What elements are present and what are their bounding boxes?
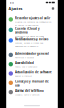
staticText: los equipos registrados xyxy=(15,38,38,41)
staticText: Permisos y accesos xyxy=(15,56,34,59)
staticText: Actualización de software xyxy=(15,70,52,74)
button[interactable]: Recordar ajustes al salir xyxy=(6,15,58,25)
staticText: Sonidos, globos e iconos que xyxy=(15,41,43,44)
staticText: Buscar e instalar xyxy=(15,74,32,77)
button[interactable]: Cuenta iCloud y sincronía xyxy=(6,25,58,36)
staticText: Sincroniza tus datos en todos xyxy=(15,35,44,38)
button[interactable]: Consejos y manual de uso xyxy=(6,78,58,88)
button[interactable]: Accesibilidad xyxy=(6,60,58,69)
staticText: Guarda los cambios de configuración xyxy=(15,20,51,23)
staticText: Notificaciones y avisos xyxy=(15,37,48,41)
button[interactable]: Perfil xyxy=(51,6,55,11)
staticText: Aprende a usar tu equipo xyxy=(15,87,39,91)
button[interactable]: Notificaciones y avisos xyxy=(6,36,58,46)
staticText: Cuenta iCloud y sincronía xyxy=(15,27,40,34)
staticText: Acerca del teléfono xyxy=(15,89,44,93)
staticText: Recordar ajustes al salir xyxy=(15,16,50,20)
staticText: Administrador general xyxy=(15,52,49,55)
button[interactable]: Acerca del teléfono xyxy=(6,88,58,97)
button[interactable]: Administrador general xyxy=(6,50,58,60)
staticText: Accesibilidad xyxy=(15,61,34,65)
staticText: al cerrar la aplicación xyxy=(15,24,38,27)
button[interactable]: Actualización de software xyxy=(6,69,58,78)
staticText: aparecen en la pantalla xyxy=(15,45,38,48)
staticText: Ajustes xyxy=(9,6,23,11)
staticText: 9:41 xyxy=(10,1,14,4)
staticText: Modelo, serie y versión xyxy=(15,93,39,96)
staticText: Consejos y manual de uso xyxy=(15,80,49,87)
staticText: Texto, voz y contraste xyxy=(15,65,37,68)
